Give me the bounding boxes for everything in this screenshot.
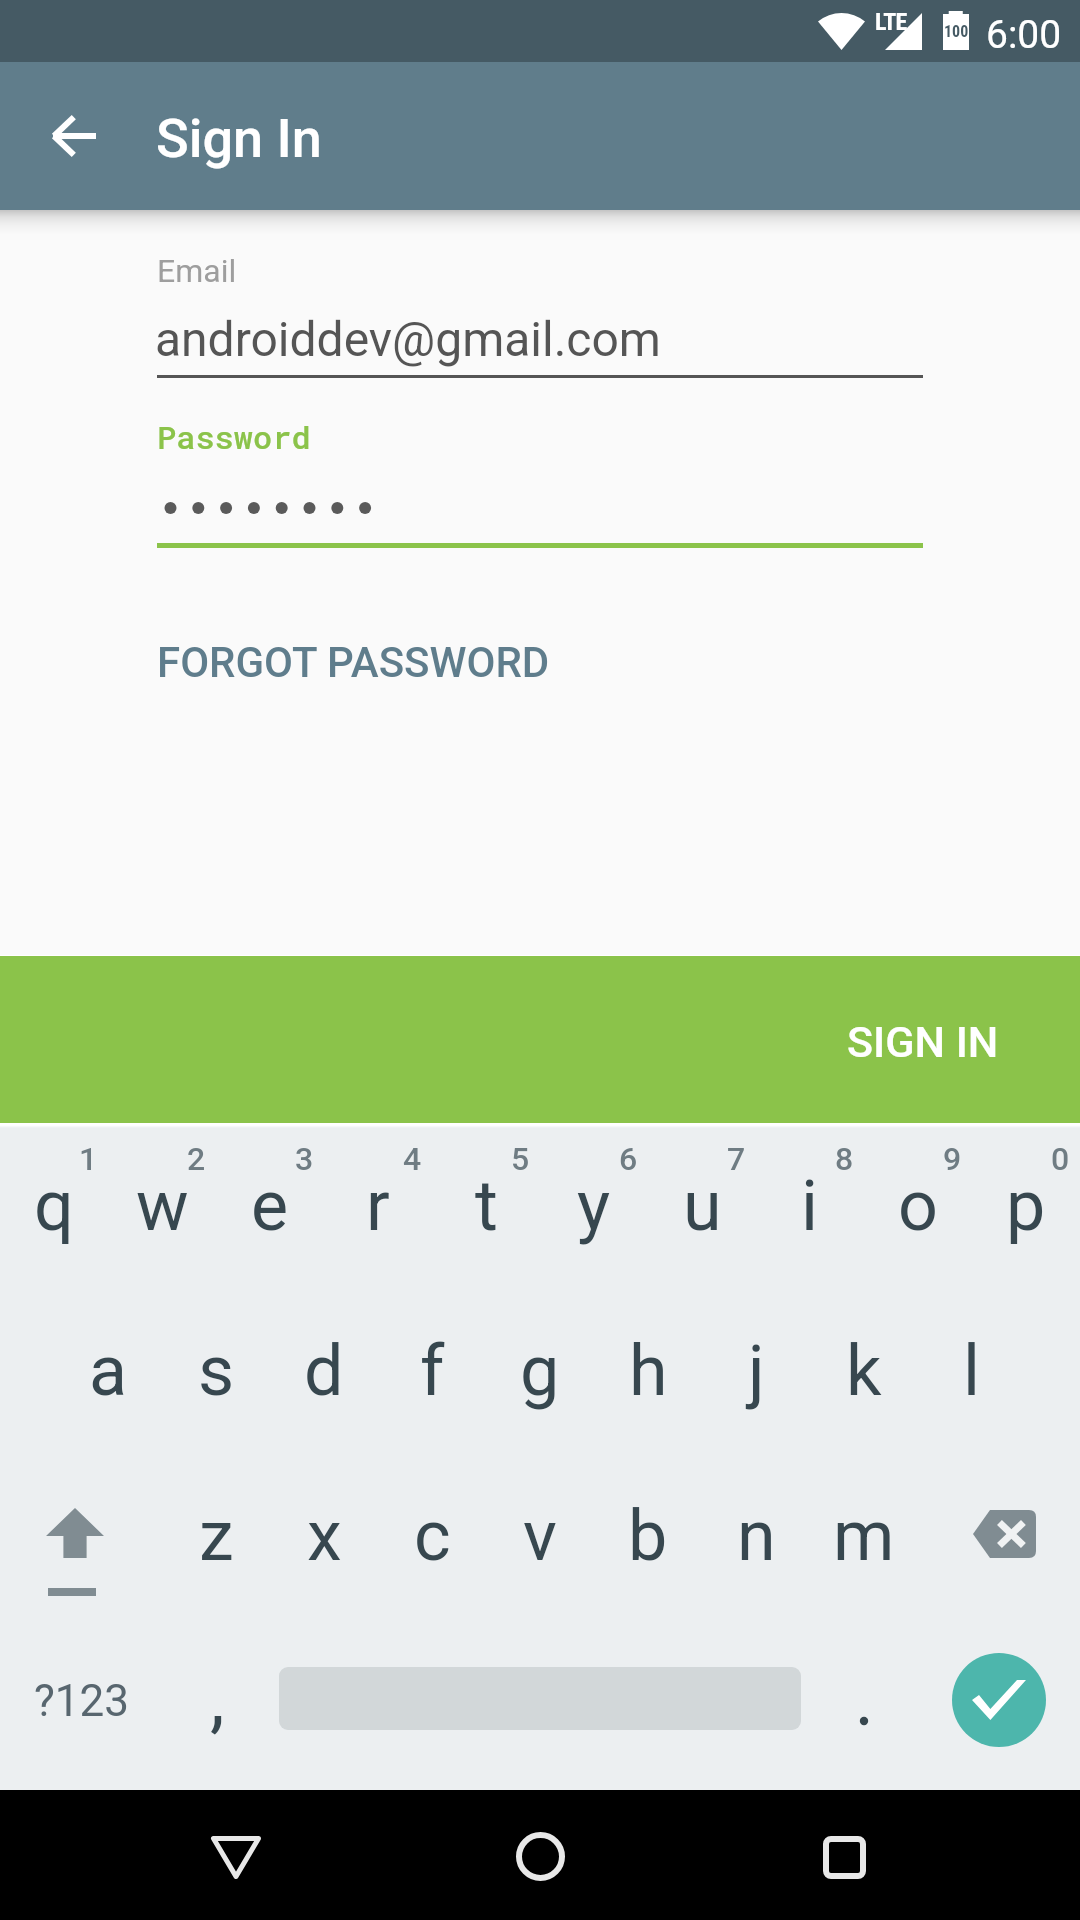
button[interactable]: i — [756, 1122, 864, 1289]
button[interactable] — [810, 1623, 918, 1790]
staticText: z — [199, 1495, 234, 1577]
staticText: g — [520, 1330, 560, 1412]
button[interactable]: Home — [480, 1793, 600, 1919]
staticText: b — [628, 1495, 668, 1577]
staticText: d — [304, 1330, 344, 1412]
staticText: 5 — [511, 1140, 530, 1178]
button[interactable]: e — [216, 1122, 324, 1289]
staticText: 8 — [835, 1140, 854, 1178]
staticText: 2 — [187, 1140, 206, 1178]
button[interactable]: FORGOT PASSWORD — [157, 638, 550, 687]
staticText: 3 — [295, 1140, 314, 1178]
staticText: v — [523, 1495, 557, 1577]
button[interactable]: b — [594, 1452, 702, 1619]
button[interactable]: , — [162, 1623, 270, 1790]
button[interactable]: Enter — [952, 1653, 1046, 1747]
button[interactable]: m — [810, 1452, 918, 1619]
button[interactable]: k — [810, 1287, 918, 1454]
staticText: x — [307, 1495, 342, 1577]
staticText: FORGOT PASSWORD — [157, 638, 550, 687]
staticText: w — [136, 1165, 189, 1247]
button[interactable]: Shift — [0, 1456, 162, 1623]
button[interactable]: Backspace — [918, 1456, 1080, 1623]
staticText: i — [801, 1165, 819, 1247]
button[interactable]: s — [162, 1287, 270, 1454]
staticText: f — [420, 1330, 445, 1412]
button[interactable]: l — [918, 1287, 1026, 1454]
staticText: k — [846, 1330, 882, 1412]
staticText: 6:00 — [986, 12, 1062, 58]
staticText: j — [748, 1330, 765, 1412]
button[interactable]: n — [702, 1452, 810, 1619]
staticText: Sign In — [156, 107, 322, 170]
button[interactable]: Back — [0, 62, 148, 210]
staticText: 7 — [727, 1140, 746, 1178]
staticText: , — [210, 1655, 225, 1742]
staticText: c — [414, 1495, 451, 1577]
button[interactable]: v — [486, 1452, 594, 1619]
staticText: LTE — [875, 8, 907, 36]
staticText: y — [577, 1165, 611, 1247]
button[interactable]: j — [702, 1287, 810, 1454]
button[interactable]: g — [486, 1287, 594, 1454]
staticText: q — [34, 1165, 74, 1247]
staticText: 4 — [403, 1140, 422, 1178]
staticText: l — [963, 1330, 981, 1412]
staticText: 100 — [944, 22, 969, 41]
button[interactable]: z — [162, 1452, 270, 1619]
staticText: Password — [157, 415, 311, 457]
button[interactable]: t — [432, 1122, 540, 1289]
button[interactable]: y — [540, 1122, 648, 1289]
staticText: m — [833, 1495, 895, 1577]
button[interactable]: h — [594, 1287, 702, 1454]
staticText: Email — [157, 252, 237, 290]
staticText: p — [1006, 1165, 1046, 1247]
button[interactable]: d — [270, 1287, 378, 1454]
staticText: 0 — [1051, 1140, 1070, 1178]
staticText: o — [898, 1165, 938, 1247]
button[interactable]: w — [108, 1122, 216, 1289]
staticText: 6 — [619, 1140, 638, 1178]
button[interactable]: q — [0, 1122, 108, 1289]
button[interactable]: ?123 — [0, 1623, 162, 1790]
button[interactable]: p — [972, 1122, 1080, 1289]
button[interactable]: u — [648, 1122, 756, 1289]
button[interactable]: c — [378, 1452, 486, 1619]
staticText: h — [629, 1330, 668, 1412]
button[interactable]: SIGN IN — [0, 956, 1080, 1123]
staticText: r — [366, 1165, 390, 1247]
staticText: n — [737, 1495, 776, 1577]
button[interactable]: x — [270, 1452, 378, 1619]
staticText: 9 — [943, 1140, 962, 1178]
staticText: ?123 — [34, 1675, 129, 1727]
staticText: u — [683, 1165, 722, 1247]
staticText: s — [198, 1330, 235, 1412]
staticText: t — [475, 1165, 498, 1247]
staticText: androiddev@gmail.com — [155, 311, 661, 367]
button[interactable]: o — [864, 1122, 972, 1289]
staticText: e — [251, 1165, 289, 1247]
staticText: a — [89, 1330, 128, 1412]
button[interactable]: Recents — [784, 1795, 904, 1919]
button[interactable]: f — [378, 1287, 486, 1454]
button[interactable]: r — [324, 1122, 432, 1289]
staticText: SIGN IN — [847, 1017, 999, 1067]
button[interactable]: a — [54, 1287, 162, 1454]
staticText: 1 — [79, 1140, 98, 1178]
button[interactable]: Back — [176, 1795, 296, 1919]
